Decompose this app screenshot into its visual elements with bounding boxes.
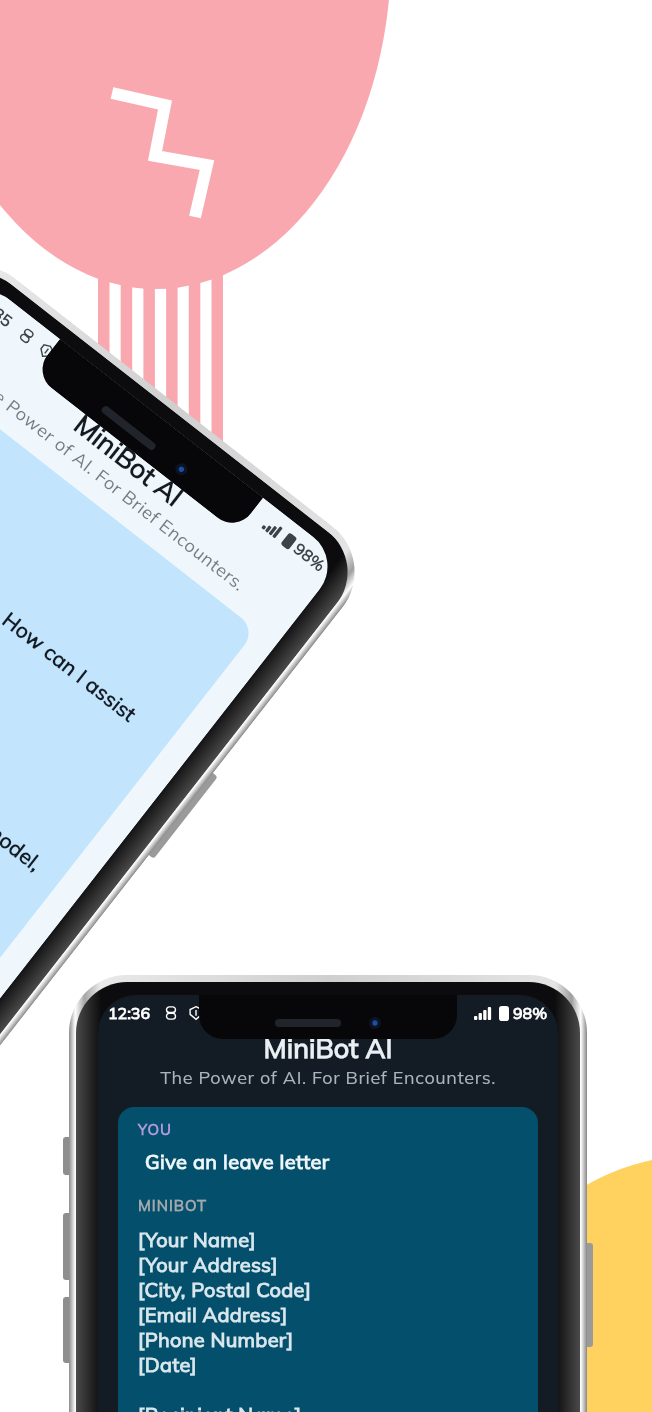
staticText: 98%: [290, 538, 330, 576]
staticText: MiniBot AI: [0, 305, 321, 615]
staticText: 12:35: [0, 289, 17, 331]
staticText: I am a very large AI language model, tra…: [0, 633, 48, 952]
staticText: MiniBot AI: [98, 1031, 558, 1065]
staticText: [Your Name] [Your Address] [City, Postal…: [138, 1227, 312, 1412]
staticText: Hello! I'm MiniBot. How can I assist you…: [0, 494, 159, 793]
button[interactable]: YOU: [118, 1107, 538, 1412]
staticText: 12:36: [108, 1003, 151, 1023]
staticText: YOU: [138, 1120, 172, 1139]
staticText: MINIBOT: [138, 1196, 208, 1215]
staticText: Give an leave letter: [145, 1149, 330, 1174]
staticText: The Power of AI. For Brief Encounters.: [0, 333, 299, 634]
button[interactable]: Hello! I'm MiniBot. How can I assist you…: [0, 377, 257, 1015]
staticText: 98%: [513, 1003, 548, 1023]
staticText: The Power of AI. For Brief Encounters.: [98, 1066, 558, 1089]
